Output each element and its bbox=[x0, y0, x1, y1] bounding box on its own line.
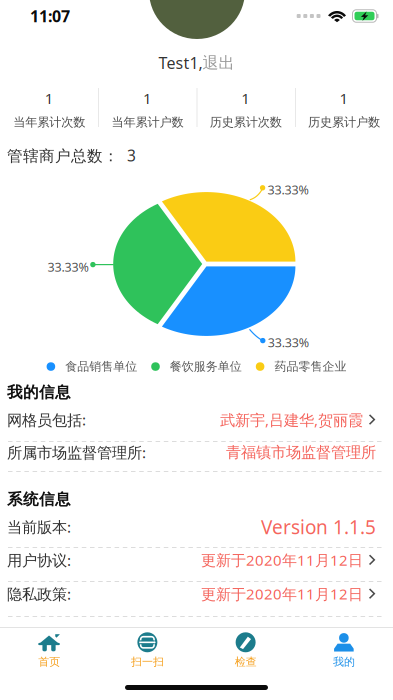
staticText: 餐饮服务单位 bbox=[170, 359, 242, 374]
staticText: 系统信息 bbox=[7, 490, 71, 509]
staticText: 退出 bbox=[202, 53, 234, 73]
staticText: 历史累计户数 bbox=[308, 114, 380, 130]
staticText: 1 bbox=[45, 88, 54, 108]
button[interactable]: 扫一扫 bbox=[98, 628, 196, 677]
staticText: 首页 bbox=[38, 655, 60, 669]
staticText: 33.33% bbox=[47, 258, 88, 275]
staticText: 更新于2020年11月12日 bbox=[201, 550, 363, 570]
staticText: 1 bbox=[143, 88, 152, 108]
button[interactable]: 我的 bbox=[295, 628, 393, 677]
button[interactable]: 用户协议: bbox=[0, 545, 393, 575]
staticText: 网格员包括: bbox=[7, 409, 86, 430]
staticText: 1 bbox=[241, 88, 250, 108]
staticText: 1 bbox=[339, 88, 348, 108]
staticText: 历史累计次数 bbox=[210, 114, 282, 130]
staticText: Version 1.1.5 bbox=[261, 514, 376, 540]
staticText: 更新于2020年11月12日 bbox=[201, 584, 363, 604]
staticText: 青福镇市场监督管理所 bbox=[226, 443, 376, 462]
staticText: 药品零售企业 bbox=[274, 359, 346, 374]
staticText: 我的 bbox=[333, 655, 355, 669]
staticText: Test1, bbox=[158, 52, 202, 74]
button[interactable]: 隐私政策: bbox=[0, 579, 393, 609]
staticText: 我的信息 bbox=[7, 383, 71, 402]
staticText: 用户协议: bbox=[7, 550, 71, 570]
staticText: 食品销售单位 bbox=[65, 359, 137, 374]
staticText: 当年累计次数 bbox=[13, 114, 85, 130]
staticText: 当年累计户数 bbox=[111, 114, 183, 130]
button[interactable]: 当前版本: bbox=[0, 512, 393, 542]
staticText: 隐私政策: bbox=[7, 583, 71, 604]
staticText: 11:07 bbox=[30, 5, 70, 27]
button[interactable]: 所属市场监督管理所: bbox=[0, 437, 393, 467]
staticText: 管辖商户总数： 3 bbox=[7, 145, 136, 166]
staticText: 所属市场监督管理所: bbox=[7, 442, 146, 463]
button[interactable]: 检查 bbox=[196, 628, 295, 677]
staticText: 武新宇,吕建华,贺丽霞 bbox=[220, 409, 363, 430]
staticText: 检查 bbox=[235, 655, 257, 669]
button[interactable]: 退出 bbox=[202, 53, 234, 73]
staticText: 33.33% bbox=[268, 334, 309, 351]
staticText: 当前版本: bbox=[7, 516, 71, 537]
button[interactable]: 首页 bbox=[0, 628, 98, 677]
staticText: 扫一扫 bbox=[131, 655, 164, 669]
staticText: 33.33% bbox=[267, 181, 308, 198]
button[interactable]: 网格员包括: bbox=[0, 405, 393, 435]
